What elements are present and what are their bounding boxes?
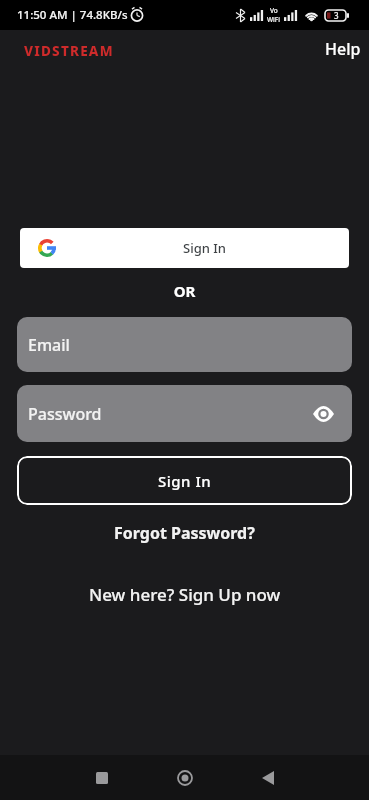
button[interactable] <box>313 406 334 422</box>
button[interactable]: Forgot Password? <box>114 522 255 544</box>
staticText: OR <box>0 281 369 301</box>
staticText: VIDSTREAM <box>24 42 114 60</box>
staticText: New here? Sign Up now <box>89 583 281 606</box>
staticText: 3 <box>334 10 339 21</box>
staticText: WiFi <box>267 15 281 24</box>
staticText: Vo <box>270 6 278 15</box>
button[interactable]: Email <box>17 317 352 372</box>
button[interactable]: Sign In <box>20 228 349 268</box>
button[interactable]: New here? Sign Up now <box>89 583 281 606</box>
staticText: Help <box>325 38 361 60</box>
button[interactable] <box>177 770 193 786</box>
button[interactable] <box>96 772 108 784</box>
button[interactable] <box>262 771 274 785</box>
button[interactable]: Help <box>325 40 361 62</box>
staticText: Email <box>28 334 70 356</box>
staticText: Sign In <box>158 471 212 491</box>
staticText: Sign In <box>183 239 227 257</box>
staticText: Forgot Password? <box>114 522 255 544</box>
button[interactable]: Password <box>17 385 352 442</box>
staticText: 11:50 AM | 74.8KB/s <box>17 7 128 23</box>
staticText: Password <box>28 403 102 425</box>
button[interactable]: Sign In <box>17 456 352 505</box>
